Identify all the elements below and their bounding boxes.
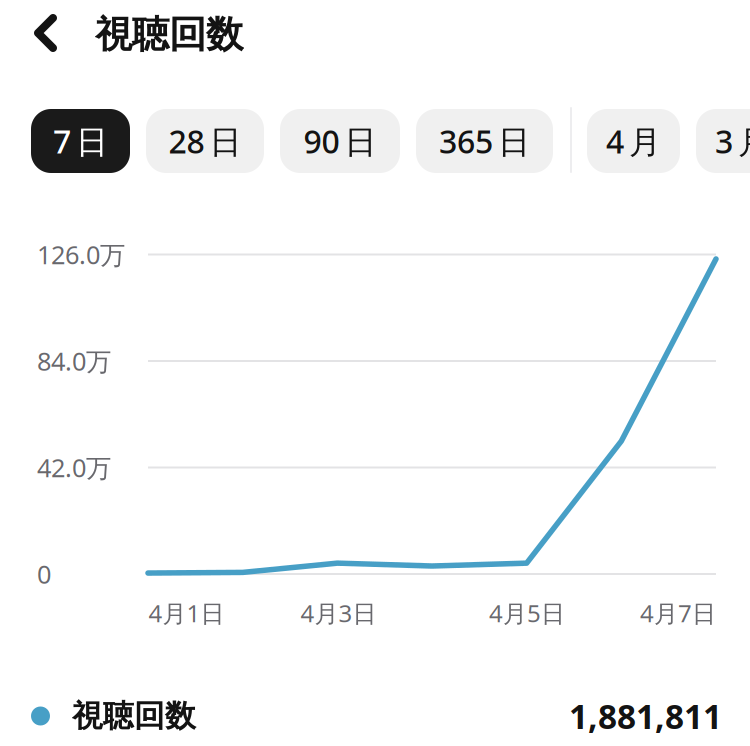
staticText: 42.0万 xyxy=(37,451,111,484)
button[interactable]: Back xyxy=(0,0,95,66)
staticText: 4月3日 xyxy=(300,597,376,629)
button[interactable]: 7 日 xyxy=(31,109,130,173)
staticText: 4月1日 xyxy=(148,597,224,629)
staticText: 28 日 xyxy=(168,120,241,162)
staticText: 4月5日 xyxy=(489,597,565,629)
staticText: 365 日 xyxy=(439,120,530,162)
staticText: 3 月 xyxy=(715,120,750,162)
button[interactable]: 90 日 xyxy=(280,109,400,173)
button[interactable]: 3 月 xyxy=(696,109,750,173)
staticText: 1,881,811 xyxy=(569,694,722,738)
staticText: 7 日 xyxy=(53,120,108,162)
button[interactable]: 28 日 xyxy=(146,109,264,173)
staticText: 視聴回数 xyxy=(95,12,243,57)
button[interactable]: 4 月 xyxy=(587,109,680,173)
staticText: 126.0万 xyxy=(37,238,125,271)
staticText: 4月7日 xyxy=(640,597,716,629)
staticText: 84.0万 xyxy=(37,344,111,378)
button[interactable]: 365 日 xyxy=(416,109,553,173)
staticText: 視聴回数 xyxy=(72,697,196,735)
staticText: 90 日 xyxy=(303,120,376,162)
staticText: 0 xyxy=(37,557,51,591)
staticText: 4 月 xyxy=(606,120,661,162)
